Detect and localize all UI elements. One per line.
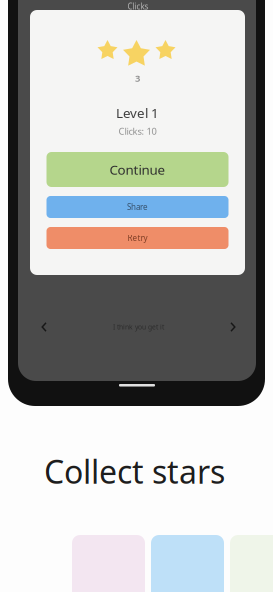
- button[interactable]: Share: [46, 196, 228, 218]
- staticText: Collect stars: [44, 450, 225, 492]
- staticText: Continue: [109, 161, 165, 178]
- button[interactable]: Next: [225, 317, 241, 337]
- staticText: Share: [127, 202, 148, 212]
- button[interactable]: Retry: [46, 227, 228, 249]
- staticText: Clicks: 10: [118, 125, 156, 137]
- button[interactable]: Previous: [36, 317, 52, 337]
- staticText: Clicks: [127, 1, 148, 12]
- button[interactable]: Continue: [46, 152, 228, 187]
- staticText: 3: [135, 72, 140, 84]
- staticText: I think you get it: [113, 323, 164, 331]
- staticText: Retry: [127, 233, 147, 243]
- staticText: Level 1: [116, 104, 159, 122]
